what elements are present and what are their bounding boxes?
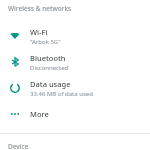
staticText: More [30,109,49,119]
button[interactable]: Wi-Fi settings [0,23,150,49]
staticText: 33.46 MB of data used [30,90,93,98]
button[interactable]: Bluetooth settings [0,49,150,75]
button[interactable]: More wireless settings [0,101,150,127]
staticText: Wireless & networks [8,4,72,13]
staticText: Bluetooth [30,53,66,63]
staticText: Wi-Fi [30,27,48,37]
staticText: "Arbok 5G" [30,38,61,46]
staticText: Device [8,142,29,150]
staticText: Disconnected [30,64,69,72]
button[interactable]: Data usage settings [0,75,150,101]
staticText: Data usage [30,79,71,89]
